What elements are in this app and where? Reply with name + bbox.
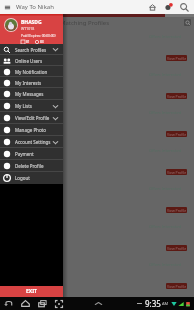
button[interactable]: Back: [4, 299, 13, 308]
staticText: WT1018: [21, 26, 35, 31]
staticText: My Interests: [15, 80, 42, 86]
staticText: 83: [40, 40, 44, 44]
button[interactable]: Offers Interested: [0, 296, 194, 297]
staticText: Offers Interested: [149, 110, 182, 115]
staticText: Offers Interested: [149, 72, 182, 77]
staticText: Offers Interested: [149, 262, 182, 267]
staticText: View Profile: [167, 246, 187, 251]
staticText: Payment: [15, 151, 34, 157]
button[interactable]: View Profile: [166, 55, 187, 61]
button[interactable]: View Profile: [166, 93, 187, 99]
button[interactable]: My Notification: [0, 66, 63, 77]
button[interactable]: Search: [179, 2, 190, 13]
staticText: Offers Interested: [149, 186, 182, 191]
button[interactable]: View Profile: [166, 131, 187, 137]
staticText: Paid (Expires: 00:00:00): [21, 34, 56, 38]
button[interactable]: EXIT: [0, 286, 63, 297]
button[interactable]: View Profile: [166, 169, 187, 175]
staticText: Manage Photo: [15, 127, 46, 133]
button[interactable]: View Profile: [166, 207, 187, 213]
staticText: Offers Interested: [149, 148, 182, 153]
staticText: Account Settings: [15, 139, 51, 145]
button[interactable]: Offers Interested: [0, 258, 194, 296]
button[interactable]: Delete Profile: [0, 160, 63, 172]
button[interactable]: Manage Photo: [0, 124, 63, 136]
button[interactable]: Logout: [0, 172, 63, 184]
staticText: Online Users: [15, 58, 43, 64]
staticText: 9:35: [145, 298, 161, 309]
staticText: View Profile: [167, 56, 187, 61]
button[interactable]: Offers Interested: [0, 144, 194, 182]
staticText: EXIT: [26, 288, 37, 295]
button[interactable]: View Profile: [166, 245, 187, 251]
staticText: Search Profiles: [15, 47, 47, 53]
button[interactable]: Search Profiles: [0, 44, 63, 55]
staticText: Offers Interested: [149, 224, 182, 229]
button[interactable]: Offers Interested: [0, 30, 194, 68]
button[interactable]: Screenshot: [54, 299, 64, 309]
button[interactable]: Recent apps: [38, 299, 47, 308]
button[interactable]: View Profile: [166, 283, 187, 289]
button[interactable]: Payment: [0, 148, 63, 160]
staticText: Offers Interested: [149, 34, 182, 39]
staticText: My Messages: [15, 91, 44, 97]
button[interactable]: Offers Interested: [0, 220, 194, 258]
staticText: Logout: [15, 175, 30, 181]
button[interactable]: Online Users: [0, 55, 63, 66]
button[interactable]: Notifications: [163, 2, 174, 13]
button[interactable]: Home: [21, 299, 30, 308]
button[interactable]: My Lists: [0, 100, 63, 112]
staticText: View/Edit Profile: [15, 115, 50, 121]
button[interactable]: My Interests: [0, 77, 63, 88]
staticText: View Profile: [167, 208, 187, 213]
staticText: Way To Nikah: [16, 3, 54, 11]
staticText: View Profile: [167, 94, 187, 99]
button[interactable]: Account Settings: [0, 136, 63, 148]
staticText: Matching Profiles: [60, 19, 110, 27]
button[interactable]: Search: [184, 19, 191, 26]
button[interactable]: Home: [147, 2, 158, 13]
staticText: BHASDG: [21, 19, 42, 26]
button[interactable]: Offers Interested: [0, 106, 194, 144]
button[interactable]: My Messages: [0, 88, 63, 100]
staticText: View Profile: [167, 284, 187, 289]
staticText: My Notification: [15, 69, 48, 75]
staticText: 81: [26, 40, 30, 44]
button[interactable]: Offers Interested: [0, 68, 194, 106]
button[interactable]: Offers Interested: [0, 182, 194, 220]
staticText: AM: [162, 301, 169, 306]
staticText: View Profile: [167, 132, 187, 137]
staticText: View Profile: [167, 170, 187, 175]
staticText: Delete Profile: [15, 163, 44, 169]
staticText: My Lists: [15, 103, 33, 109]
button[interactable]: Menu: [3, 3, 12, 12]
button[interactable]: View/Edit Profile: [0, 112, 63, 124]
